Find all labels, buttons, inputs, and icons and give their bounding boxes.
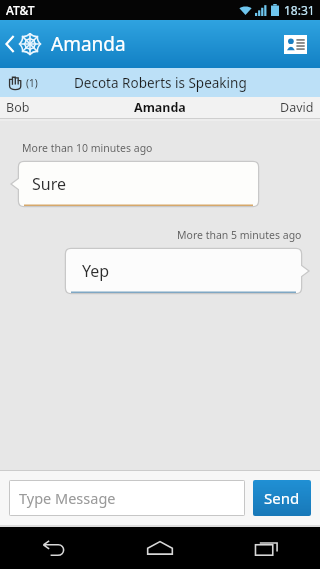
button[interactable]: Send — [253, 480, 311, 516]
staticText: AT&T — [6, 2, 35, 18]
button[interactable]: David — [280, 99, 314, 116]
staticText: Yep — [82, 260, 110, 282]
button[interactable]: Amanda — [134, 99, 186, 116]
staticText: More than 10 minutes ago — [22, 141, 153, 155]
staticText: Type Message — [19, 488, 116, 508]
button[interactable]: Amanda — [0, 25, 134, 63]
button[interactable]: Sure — [12, 162, 258, 206]
staticText: Decota Roberts is Speaking — [74, 74, 247, 92]
staticText: 18:31 — [284, 2, 315, 18]
staticText: More than 5 minutes ago — [177, 228, 302, 242]
staticText: Sure — [32, 173, 66, 195]
button[interactable]: Type Message — [9, 480, 245, 516]
staticText: Amanda — [51, 31, 126, 57]
button[interactable]: Yep — [66, 249, 308, 293]
button[interactable]: Bob — [6, 99, 30, 116]
button[interactable]: (1) — [0, 68, 320, 97]
staticText: Send — [264, 488, 300, 508]
staticText: (1) — [26, 76, 38, 90]
button[interactable]: Contact details — [278, 27, 312, 61]
button[interactable]: Recent apps — [213, 527, 320, 569]
button[interactable]: Home — [106, 527, 213, 569]
button[interactable]: Back — [0, 527, 106, 569]
